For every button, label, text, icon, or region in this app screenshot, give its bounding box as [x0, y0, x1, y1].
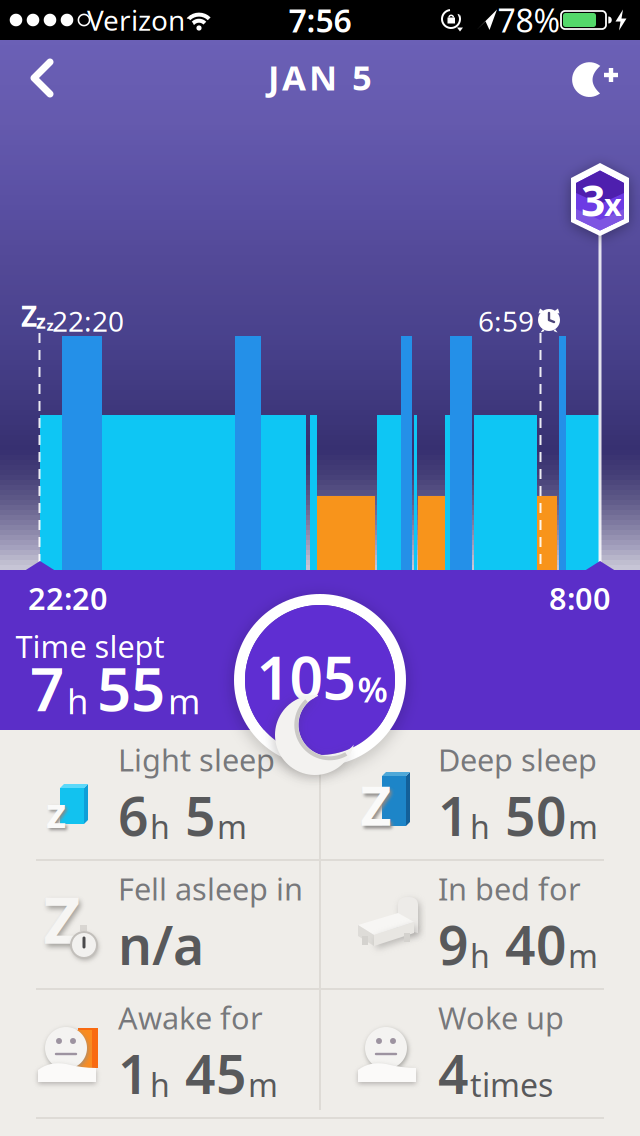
- staticText: 55: [97, 648, 165, 728]
- button[interactable]: Z: [0, 859, 320, 988]
- staticText: 4: [438, 1038, 469, 1109]
- button[interactable]: In bed for: [320, 859, 640, 988]
- staticText: Z: [360, 770, 391, 840]
- staticText: %: [357, 666, 387, 712]
- staticText: 9: [438, 909, 469, 980]
- staticText: m: [168, 678, 200, 724]
- staticText: 7:56: [288, 0, 351, 41]
- button[interactable]: Awake for: [0, 988, 320, 1117]
- staticText: Awake for: [118, 997, 263, 1038]
- staticText: 105: [256, 638, 356, 716]
- staticText: JAN 5: [268, 54, 372, 100]
- staticText: 6: [118, 780, 149, 851]
- staticText: 78%: [497, 0, 560, 41]
- staticText: Woke up: [438, 997, 564, 1038]
- button[interactable]: Woke up: [320, 988, 640, 1117]
- staticText: Light sleep: [118, 739, 275, 780]
- staticText: z: [46, 315, 53, 335]
- button[interactable]: Back: [24, 56, 68, 100]
- staticText: h: [150, 805, 170, 848]
- staticText: 7: [30, 648, 64, 728]
- staticText: 1: [118, 1038, 149, 1109]
- staticText: 3: [581, 172, 605, 228]
- staticText: times: [470, 1063, 553, 1106]
- staticText: 6:59: [478, 302, 534, 340]
- staticText: Verizon: [87, 1, 185, 39]
- staticText: Deep sleep: [438, 739, 597, 780]
- staticText: h: [470, 805, 490, 848]
- staticText: m: [568, 934, 598, 977]
- staticText: 22:20: [28, 578, 108, 618]
- staticText: 1: [438, 780, 469, 851]
- staticText: h: [67, 678, 88, 724]
- staticText: x: [604, 184, 622, 224]
- staticText: h: [470, 934, 490, 977]
- staticText: 40: [491, 909, 567, 980]
- staticText: Z: [21, 297, 37, 335]
- staticText: n/a: [118, 909, 204, 980]
- staticText: m: [217, 805, 247, 848]
- staticText: h: [150, 1063, 170, 1106]
- staticText: 50: [491, 780, 567, 851]
- button[interactable]: Z: [320, 730, 640, 859]
- button[interactable]: Add sleep: [567, 57, 621, 101]
- staticText: 22:20: [52, 302, 124, 340]
- staticText: Z: [43, 876, 80, 961]
- staticText: Time slept: [15, 626, 164, 666]
- button[interactable]: JAN 5: [220, 55, 420, 99]
- staticText: m: [248, 1063, 278, 1106]
- staticText: z: [36, 308, 46, 334]
- staticText: 45: [171, 1038, 247, 1109]
- staticText: In bed for: [438, 868, 581, 909]
- staticText: z: [46, 785, 66, 839]
- button[interactable]: z: [0, 730, 320, 859]
- staticText: Fell asleep in: [118, 868, 303, 909]
- staticText: 8:00: [549, 578, 611, 618]
- staticText: 5: [171, 780, 216, 851]
- staticText: m: [568, 805, 598, 848]
